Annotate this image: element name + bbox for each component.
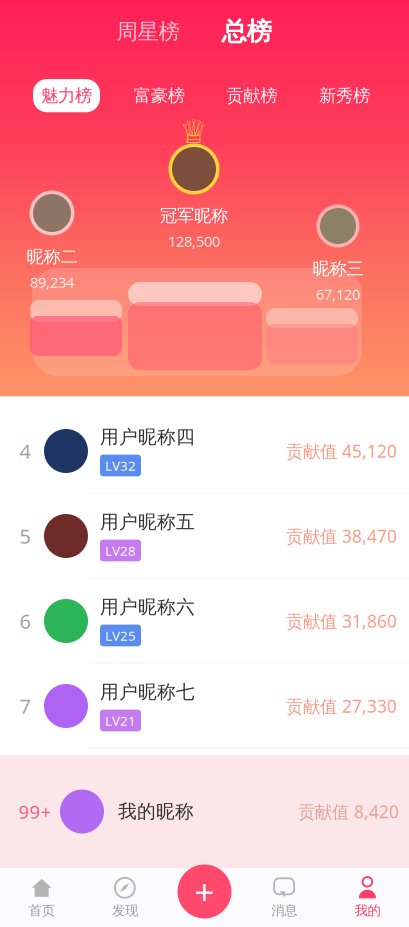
staticText: LV32 <box>105 457 136 474</box>
staticText: 消息 <box>271 902 297 919</box>
button[interactable]: 消息 <box>242 871 326 924</box>
staticText: 新秀榜 <box>319 85 370 106</box>
button[interactable]: ♕ <box>160 142 228 251</box>
staticText: 魅力榜 <box>41 85 92 106</box>
staticText: 5 <box>19 523 30 549</box>
button[interactable]: 我的 <box>326 871 409 924</box>
button[interactable]: 5 <box>0 493 409 578</box>
staticText: 昵称三 <box>312 258 363 279</box>
button[interactable]: 周星榜 <box>110 14 185 49</box>
button[interactable]: 7 <box>0 663 409 748</box>
staticText: 128,500 <box>168 231 220 251</box>
button[interactable]: 贡献榜 <box>218 78 285 113</box>
staticText: 用户昵称六 <box>100 596 195 619</box>
staticText: 贡献值 8,420 <box>298 800 399 823</box>
staticText: 总榜 <box>221 16 271 47</box>
staticText: 冠军昵称 <box>160 205 228 226</box>
staticText: 贡献值 27,330 <box>286 694 397 717</box>
button[interactable]: 6 <box>0 578 409 663</box>
staticText: 周星榜 <box>116 18 179 45</box>
staticText: 7 <box>19 693 30 719</box>
button[interactable]: 99+ <box>0 755 409 868</box>
button[interactable]: 首页 <box>0 871 83 924</box>
staticText: 昵称二 <box>26 246 77 267</box>
staticText: LV28 <box>105 542 136 559</box>
button[interactable]: 新秀榜 <box>311 78 378 113</box>
button[interactable]: 富豪榜 <box>126 78 193 113</box>
button[interactable]: Go live <box>177 864 231 918</box>
staticText: 我的昵称 <box>118 800 194 823</box>
button[interactable]: 总榜 <box>215 14 277 49</box>
staticText: 贡献值 45,120 <box>286 439 397 462</box>
button[interactable]: 魅力榜 <box>33 79 100 112</box>
staticText: ♕ <box>179 114 208 150</box>
button[interactable]: 昵称三 <box>312 203 363 304</box>
staticText: 6 <box>19 608 30 634</box>
button[interactable]: 4 <box>0 408 409 493</box>
staticText: 我的 <box>354 902 380 919</box>
staticText: 99+ <box>18 799 51 824</box>
staticText: 用户昵称五 <box>100 511 195 534</box>
staticText: 用户昵称四 <box>100 426 195 449</box>
staticText: 4 <box>19 438 30 464</box>
staticText: 用户昵称七 <box>100 681 195 704</box>
staticText: 89,234 <box>30 272 74 292</box>
button[interactable]: 发现 <box>83 871 166 924</box>
button[interactable]: 昵称二 <box>26 189 77 292</box>
staticText: 贡献值 31,860 <box>286 609 397 632</box>
staticText: 富豪榜 <box>134 85 185 106</box>
staticText: 发现 <box>112 902 138 919</box>
staticText: 贡献值 38,470 <box>286 524 397 547</box>
staticText: 首页 <box>29 902 55 919</box>
staticText: 67,120 <box>316 284 360 304</box>
staticText: LV21 <box>105 712 136 729</box>
staticText: LV25 <box>105 627 136 644</box>
staticText: + <box>194 868 214 914</box>
staticText: 贡献榜 <box>226 85 277 106</box>
